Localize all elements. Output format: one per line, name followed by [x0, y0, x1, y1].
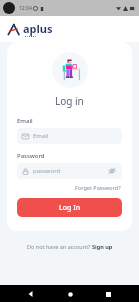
staticText: aplus [23, 21, 53, 36]
button[interactable]: Do not have an account? [25, 241, 115, 252]
button[interactable]: Forget Password? [74, 183, 122, 192]
staticText: 12:04 [19, 5, 32, 12]
button[interactable]: Log In [17, 198, 122, 217]
button[interactable]: Back [23, 286, 39, 302]
button[interactable]: Email [17, 128, 122, 144]
staticText: Log in [55, 94, 84, 108]
button[interactable]: password [17, 163, 122, 179]
staticText: Do not have an account? [27, 243, 92, 250]
button[interactable]: Recents [100, 286, 116, 302]
button[interactable]: Show password [107, 166, 117, 176]
staticText: Sign up [92, 243, 113, 250]
staticText: Password [17, 152, 45, 160]
staticText: Log In [59, 203, 81, 213]
staticText: password [33, 167, 61, 175]
staticText: Forget Password? [75, 184, 121, 191]
staticText: Email [17, 117, 33, 125]
button[interactable]: Home [62, 286, 78, 302]
staticText: Email [33, 132, 49, 140]
